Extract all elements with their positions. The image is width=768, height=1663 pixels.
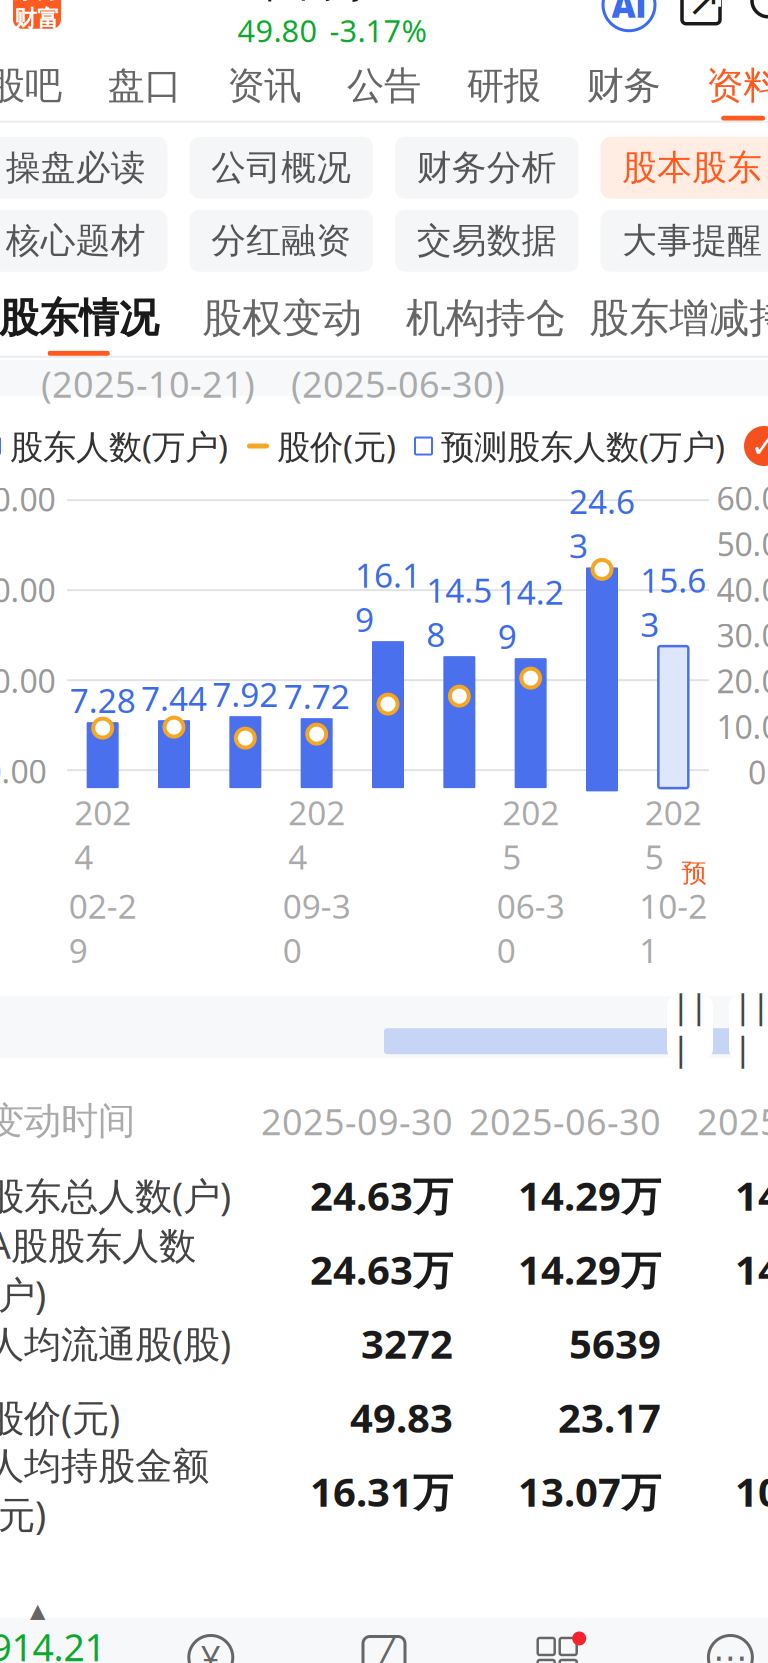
button[interactable]: 功能 xyxy=(471,1635,644,1663)
staticText: ||| xyxy=(734,985,768,1070)
button[interactable]: 大事提醒 xyxy=(600,210,768,272)
staticText: 24.63 xyxy=(569,479,635,567)
staticText: 股吧 xyxy=(0,63,62,109)
staticText: 人均持股金额(元) xyxy=(0,1443,209,1539)
staticText: 7.72 xyxy=(284,674,350,718)
staticText: 资讯 xyxy=(227,63,301,109)
staticText: 财富 xyxy=(14,5,60,32)
button[interactable]: 资料 xyxy=(683,49,768,121)
button[interactable]: 交易数据 xyxy=(395,210,578,272)
button[interactable]: Search xyxy=(747,0,768,29)
button[interactable]: 股吧 xyxy=(0,49,85,121)
staticText: 50.00 xyxy=(716,523,768,565)
staticText: 机构持仓 xyxy=(406,294,566,343)
button[interactable]: 研报 xyxy=(444,49,564,121)
staticText: -3.17% xyxy=(329,10,426,51)
staticText: 10 xyxy=(735,1465,768,1518)
button[interactable]: ⋯ xyxy=(644,1635,768,1663)
staticText: Ai xyxy=(611,0,646,27)
button[interactable]: 分红融资 xyxy=(189,210,373,272)
staticText: 06-30 xyxy=(497,884,565,972)
staticText: 2025 xyxy=(697,1097,768,1145)
button[interactable]: 盘口 xyxy=(85,49,204,121)
staticText: 公告 xyxy=(347,63,421,109)
staticText: ▲ xyxy=(30,1599,45,1622)
staticText: 14.29 xyxy=(498,570,564,658)
staticText: 16.31万 xyxy=(310,1465,453,1518)
button[interactable]: Confirm xyxy=(744,426,768,466)
button[interactable]: 财务 xyxy=(564,49,683,121)
button[interactable]: 股本股东 xyxy=(600,137,768,199)
staticText: 预 xyxy=(681,858,706,889)
staticText: 2025-09-30 xyxy=(261,1097,453,1145)
button[interactable]: Range end handle xyxy=(729,996,768,1058)
staticText: 14.29万 xyxy=(518,1169,661,1222)
staticText: 股价(元) xyxy=(0,1392,120,1442)
staticText: 2024 xyxy=(288,790,345,879)
staticText: 15.63 xyxy=(640,558,706,646)
staticText: 财务 xyxy=(586,63,660,109)
button[interactable]: 核心题材 xyxy=(0,210,167,272)
button[interactable]: East Money home xyxy=(13,0,61,29)
staticText: 2025 xyxy=(645,790,702,879)
button[interactable]: ¥ xyxy=(124,1634,297,1663)
button[interactable]: ╱ xyxy=(297,1636,471,1663)
button[interactable]: Share xyxy=(677,0,725,29)
staticText: (2025-10-21) xyxy=(41,360,255,408)
staticText: 股东情况 xyxy=(0,294,159,343)
button[interactable]: 资讯 xyxy=(204,49,324,121)
staticText: 60.00 xyxy=(716,477,768,519)
staticText: 0 xyxy=(748,751,766,793)
staticText: 财务分析 xyxy=(417,146,557,189)
staticText: 09-30 xyxy=(283,884,351,972)
staticText: 3272 xyxy=(361,1317,453,1370)
staticText: 10-21 xyxy=(639,884,707,972)
staticText: ||| xyxy=(672,985,708,1070)
staticText: 分红融资 xyxy=(211,219,351,262)
staticText: 14.29万 xyxy=(518,1243,661,1296)
staticText: 14 xyxy=(735,1243,768,1296)
staticText: 股东增减持 xyxy=(589,294,768,343)
staticText: 30.00 xyxy=(0,478,55,520)
button[interactable]: 操盘必读 xyxy=(0,137,167,199)
button[interactable]: 股东情况 xyxy=(0,294,180,356)
button[interactable]: ▲ xyxy=(0,1599,124,1663)
button[interactable]: 股东增减持 xyxy=(587,294,768,356)
staticText: (2025-06-30) xyxy=(291,360,505,408)
staticText: 交易数据 xyxy=(417,219,557,262)
button[interactable]: 公司概况 xyxy=(189,137,373,199)
staticText: 14.58 xyxy=(426,568,492,656)
staticText: 变动时间 xyxy=(0,1098,135,1144)
button[interactable]: 公告 xyxy=(324,49,444,121)
staticText: 20.00 xyxy=(0,569,55,611)
staticText: 30.00 xyxy=(716,614,768,656)
staticText: 预测股东人数(万户) xyxy=(441,424,725,468)
staticText: 1914.21 xyxy=(0,1622,106,1663)
button[interactable]: AI assistant xyxy=(603,0,655,31)
button[interactable]: 股权变动 xyxy=(180,294,384,356)
staticText: ⋯ xyxy=(713,1638,748,1663)
staticText: 2025 xyxy=(502,790,559,879)
staticText: 13.07万 xyxy=(518,1465,661,1518)
staticText: 23.17 xyxy=(558,1391,661,1444)
staticText: 研报 xyxy=(467,63,541,109)
button[interactable]: 财务分析 xyxy=(395,137,578,199)
staticText: 股东人数(万户) xyxy=(10,424,228,468)
staticText: 2025-06-30 xyxy=(469,1097,661,1145)
staticText: 公司概况 xyxy=(211,146,351,189)
staticText: ¥ xyxy=(201,1634,221,1663)
staticText: ✓ xyxy=(750,428,768,464)
staticText: 股价(元) xyxy=(277,424,396,468)
staticText: 24.63万 xyxy=(310,1243,453,1296)
staticText: 大事提醒 xyxy=(622,219,762,262)
staticText: 2024 xyxy=(74,790,131,879)
staticText: 49.80 xyxy=(237,10,317,51)
staticText: 02-29 xyxy=(69,884,137,972)
staticText: 5639 xyxy=(569,1317,661,1370)
staticText: 7.92 xyxy=(212,672,278,716)
button[interactable]: Range start handle xyxy=(667,996,713,1058)
staticText: 资料 xyxy=(706,63,768,109)
button[interactable]: 机构持仓 xyxy=(384,294,587,356)
